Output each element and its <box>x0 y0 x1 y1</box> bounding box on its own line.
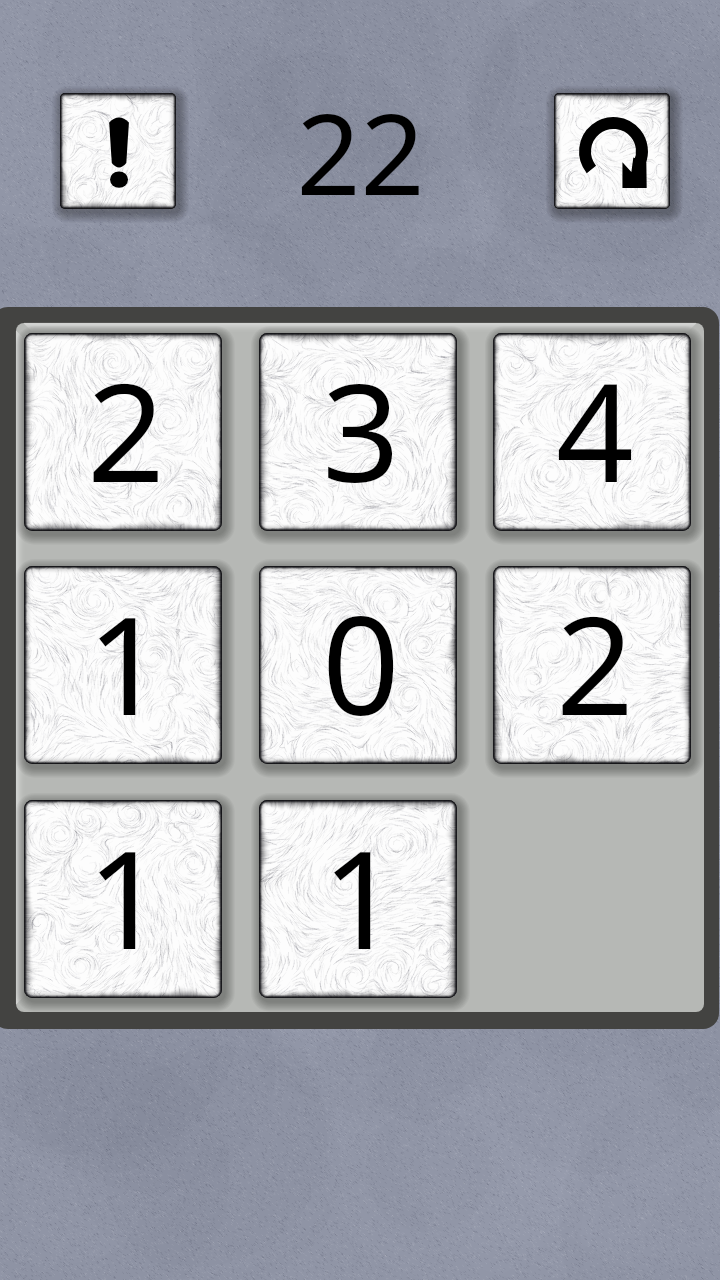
staticText: 0 <box>322 570 400 755</box>
button[interactable]: 4 <box>493 333 691 531</box>
staticText: 1 <box>87 570 165 755</box>
button[interactable]: 1 <box>24 800 222 998</box>
button[interactable]: 0 <box>259 566 457 764</box>
button[interactable]: 2 <box>493 566 691 764</box>
button[interactable]: 2 <box>24 333 222 531</box>
button[interactable]: 3 <box>259 333 457 531</box>
button[interactable]: 1 <box>259 800 457 998</box>
staticText: 22 <box>296 75 425 225</box>
staticText: 2 <box>87 337 165 522</box>
staticText: 1 <box>87 804 165 989</box>
button[interactable]: 1 <box>24 566 222 764</box>
staticText: 1 <box>322 804 400 989</box>
button[interactable]: Restart <box>554 93 670 209</box>
staticText: 4 <box>556 337 634 522</box>
button[interactable]: Hint <box>60 93 176 209</box>
staticText: 3 <box>322 337 400 522</box>
staticText: 2 <box>556 570 634 755</box>
